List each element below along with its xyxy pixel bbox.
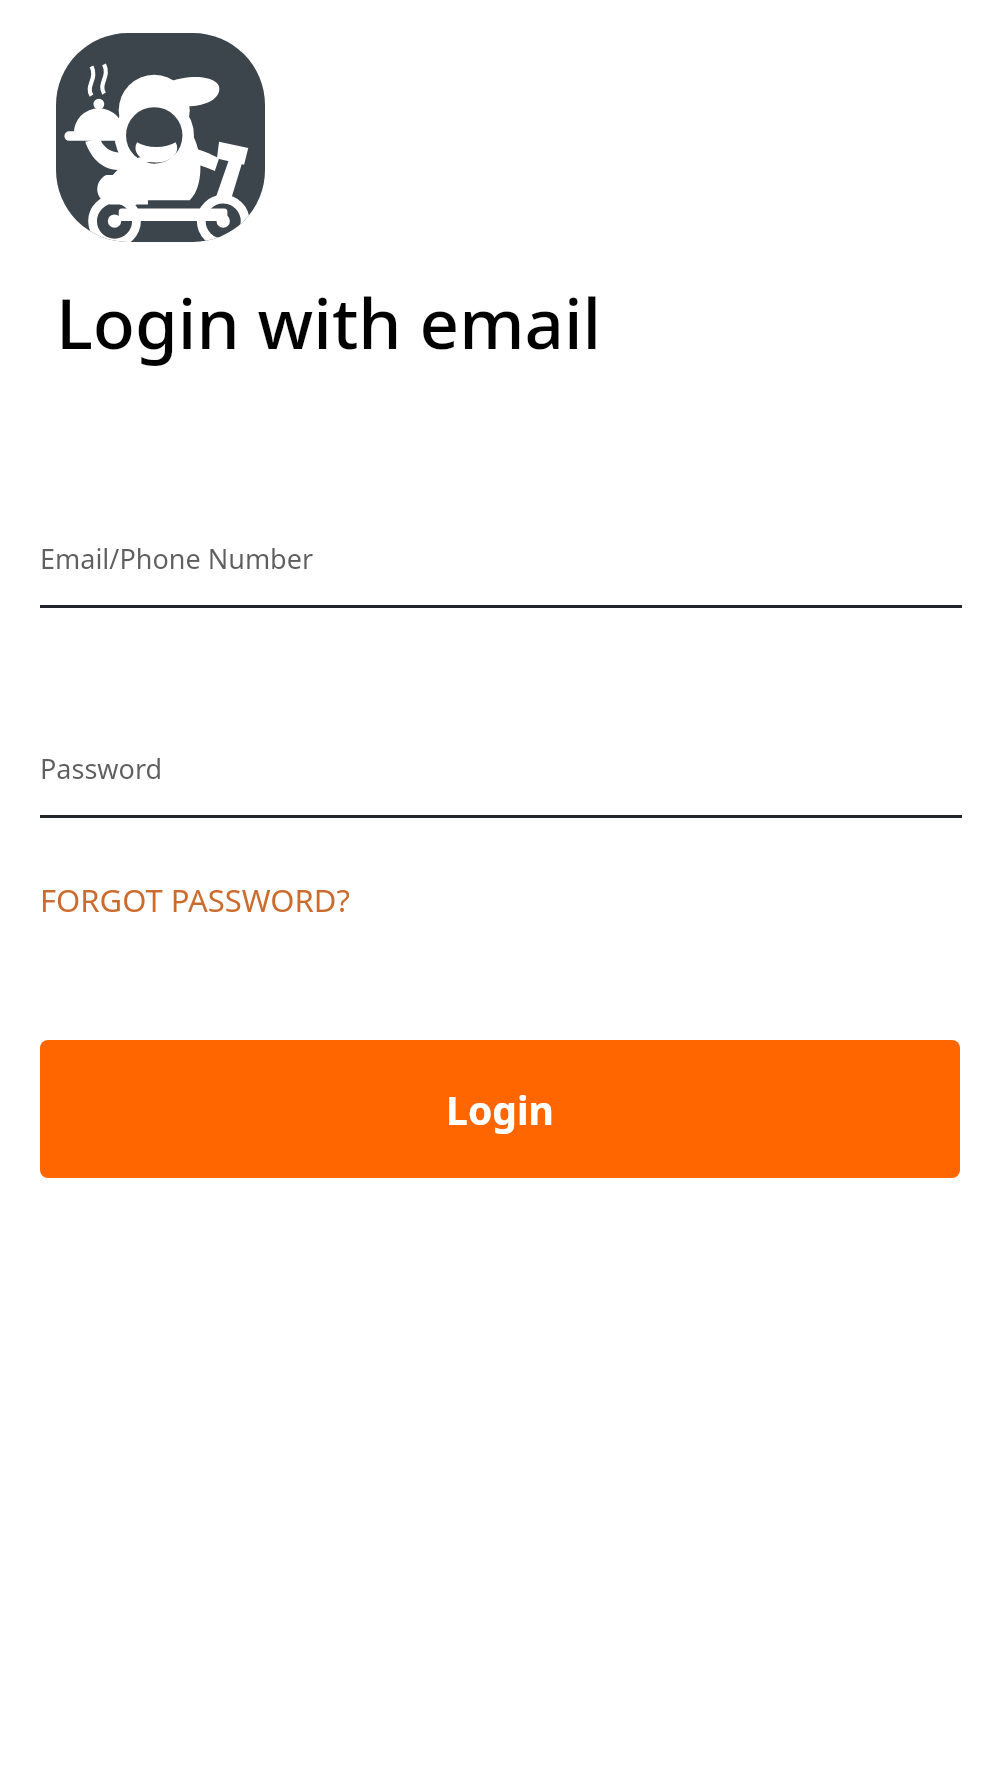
staticText: Email/Phone Number [40,540,314,577]
button[interactable]: Email/Phone Number [40,540,962,608]
staticText: Login [446,1083,554,1136]
button[interactable]: Password [40,750,962,818]
button[interactable]: Login [40,1040,960,1178]
staticText: FORGOT PASSWORD? [40,879,350,921]
staticText: Password [40,750,163,787]
staticText: Login with email [56,275,602,369]
other: App logo [56,33,265,242]
button[interactable]: FORGOT PASSWORD? [40,875,350,925]
